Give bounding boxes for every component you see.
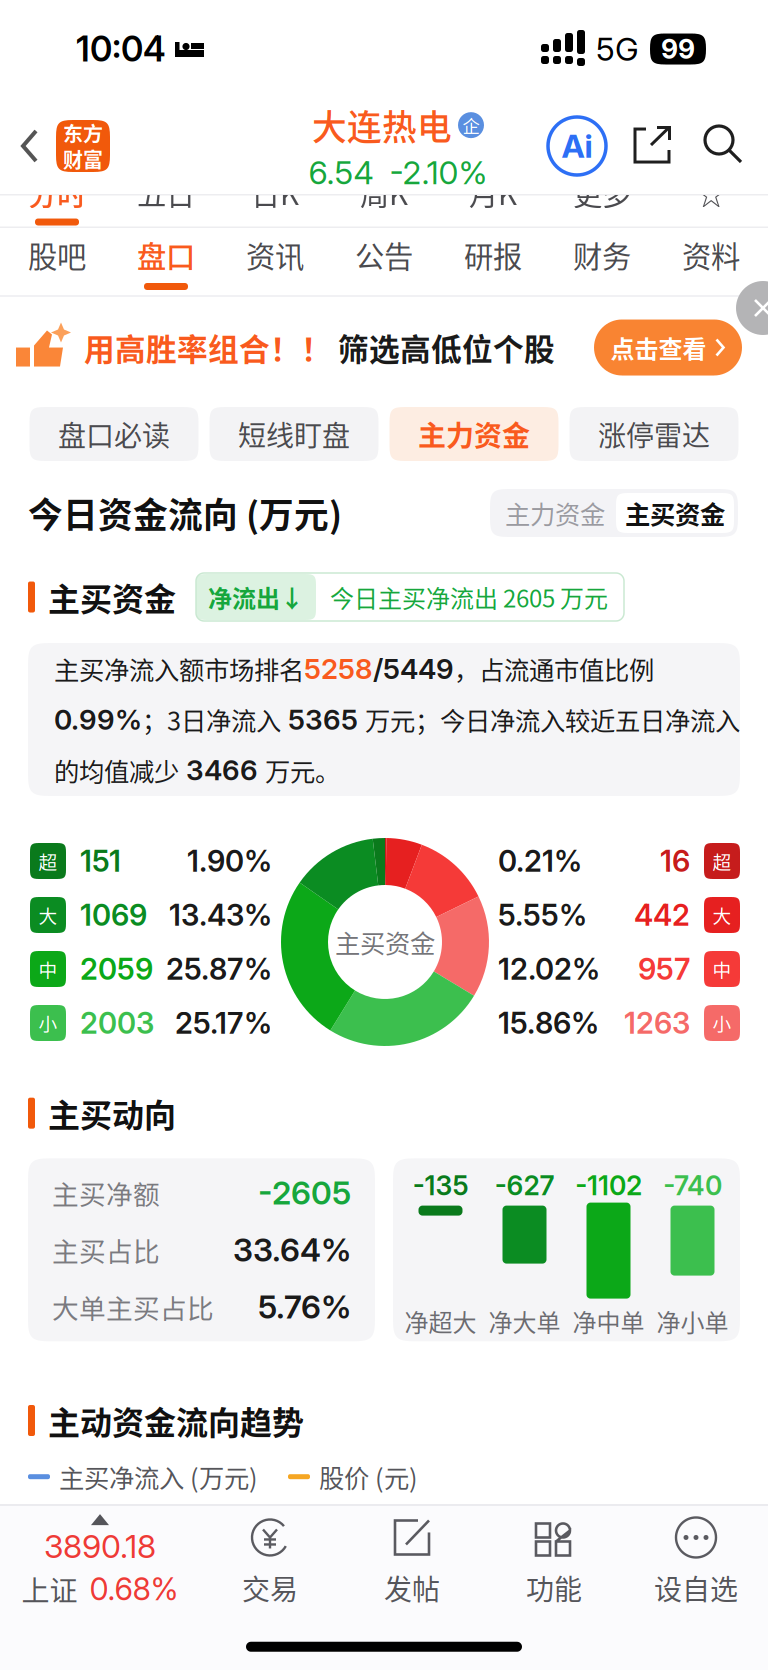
button[interactable]: 短线盯盘 <box>209 407 378 461</box>
staticText: 大连热电 <box>312 100 452 150</box>
staticText: -627 <box>494 1169 554 1202</box>
staticText: 1069 <box>80 897 147 933</box>
button[interactable]: 涨停雷达 <box>569 407 738 461</box>
staticText: ；3日净流入 <box>142 701 281 738</box>
staticText: 净大单 <box>488 1304 560 1338</box>
button[interactable]: 股吧 <box>2 228 111 295</box>
staticText: 主买净流入 (万元) <box>59 1458 258 1495</box>
staticText: 10:04 <box>76 28 166 70</box>
staticText: 财务 <box>573 233 631 276</box>
button[interactable]: 设自选 <box>625 1506 767 1618</box>
button[interactable]: 盘口 <box>111 228 220 295</box>
staticText: 中 <box>712 955 731 982</box>
staticText: 主力资金 <box>505 495 605 531</box>
button[interactable]: 交易 <box>199 1506 341 1618</box>
staticText: 东方 <box>63 118 103 147</box>
staticText: 主买净额 <box>52 1173 160 1212</box>
staticText: 企 <box>462 113 479 138</box>
staticText: 5258 <box>304 652 373 686</box>
staticText: 6.54 <box>308 153 373 192</box>
staticText: 日K <box>251 171 299 213</box>
staticText: 0.99% <box>54 703 142 736</box>
staticText: 16 <box>660 843 690 879</box>
staticText: 主买资金 <box>625 495 725 531</box>
staticText: 净中单 <box>572 1304 644 1338</box>
staticText: 净流出↓ <box>208 580 304 614</box>
button[interactable]: Shanghai Composite index <box>1 1506 199 1618</box>
staticText: 12.02% <box>498 951 600 987</box>
button[interactable]: 资讯 <box>220 228 329 295</box>
staticText: 筛选高低位个股 <box>338 325 555 370</box>
button[interactable]: 研报 <box>438 228 547 295</box>
staticText: 0.68% <box>89 1571 178 1608</box>
staticText: 0.21% <box>498 843 582 879</box>
staticText: 主买占比 <box>52 1230 160 1269</box>
staticText: /5449 <box>373 652 454 686</box>
staticText: 股吧 <box>28 233 86 276</box>
button[interactable]: East Money <box>56 120 110 172</box>
staticText: 大 <box>38 901 57 928</box>
staticText: 资讯 <box>246 233 304 276</box>
staticText: 涨停雷达 <box>598 414 710 454</box>
button[interactable]: 主力资金 <box>494 493 616 533</box>
staticText: 净小单 <box>656 1304 728 1338</box>
button[interactable]: 主买资金 <box>616 493 734 533</box>
button[interactable]: Back <box>0 99 56 193</box>
staticText: 短线盯盘 <box>238 414 350 454</box>
staticText: 主买动向 <box>48 1090 176 1136</box>
staticText: 周K <box>360 171 408 213</box>
button[interactable]: 财务 <box>547 228 656 295</box>
staticText: 主买资金 <box>48 574 176 620</box>
staticText: 今日资金流向 (万元) <box>28 488 342 538</box>
staticText: 5.76% <box>258 1287 351 1326</box>
staticText: 财富 <box>63 144 103 173</box>
staticText: 中 <box>38 955 57 982</box>
button[interactable]: Share <box>632 125 674 167</box>
staticText: 点击查看 <box>610 330 706 365</box>
staticText: 五日 <box>137 171 195 213</box>
staticText: 设自选 <box>654 1567 738 1608</box>
staticText: 5G <box>596 30 639 68</box>
staticText: 用高胜率组合！！ <box>84 325 332 370</box>
staticText: 5.55% <box>498 897 587 933</box>
staticText: 交易 <box>242 1567 298 1608</box>
button[interactable]: AI assistant <box>548 117 606 175</box>
button[interactable]: 资料 <box>656 228 765 295</box>
staticText: 5365 <box>281 703 365 736</box>
staticText: Ai <box>561 127 592 165</box>
staticText: 3890.18 <box>44 1527 156 1566</box>
staticText: ☆ <box>696 171 725 213</box>
staticText: 99 <box>661 33 695 65</box>
button[interactable]: 功能 <box>483 1506 625 1618</box>
staticText: 957 <box>638 951 690 987</box>
staticText: 151 <box>80 843 121 879</box>
button[interactable]: 发帖 <box>341 1506 483 1618</box>
button[interactable]: Search <box>702 123 748 169</box>
button[interactable]: 盘口必读 <box>29 407 198 461</box>
staticText: 1263 <box>624 1005 690 1041</box>
button[interactable]: 公告 <box>329 228 438 295</box>
staticText: ，占流通市值比例 <box>454 650 654 687</box>
staticText: 功能 <box>526 1567 582 1608</box>
button[interactable]: Close ad <box>714 297 768 351</box>
staticText: 万元。 <box>265 752 340 788</box>
staticText: -2.10% <box>389 153 487 192</box>
staticText: 13.43% <box>169 897 272 933</box>
staticText: 公告 <box>355 233 413 276</box>
staticText: 的均值减少 <box>54 752 179 788</box>
staticText: 主力资金 <box>418 414 530 454</box>
staticText: 2059 <box>80 951 153 987</box>
staticText: 盘口必读 <box>58 414 170 454</box>
staticText: 25.87% <box>166 951 272 987</box>
staticText: 主动资金流向趋势 <box>48 1397 304 1444</box>
button[interactable]: 主力资金 <box>389 407 558 461</box>
staticText: 今日主买净流出 2605 万元 <box>330 580 608 614</box>
staticText: 盘口 <box>137 233 195 276</box>
button[interactable]: 用高胜率组合！！ <box>0 297 768 398</box>
staticText: 主买资金 <box>335 924 435 960</box>
staticText: 上证 <box>21 1569 77 1609</box>
staticText: 33.64% <box>233 1230 351 1269</box>
staticText: 大 <box>712 901 731 928</box>
staticText: 分时 <box>28 171 86 213</box>
staticText: 研报 <box>464 233 522 276</box>
